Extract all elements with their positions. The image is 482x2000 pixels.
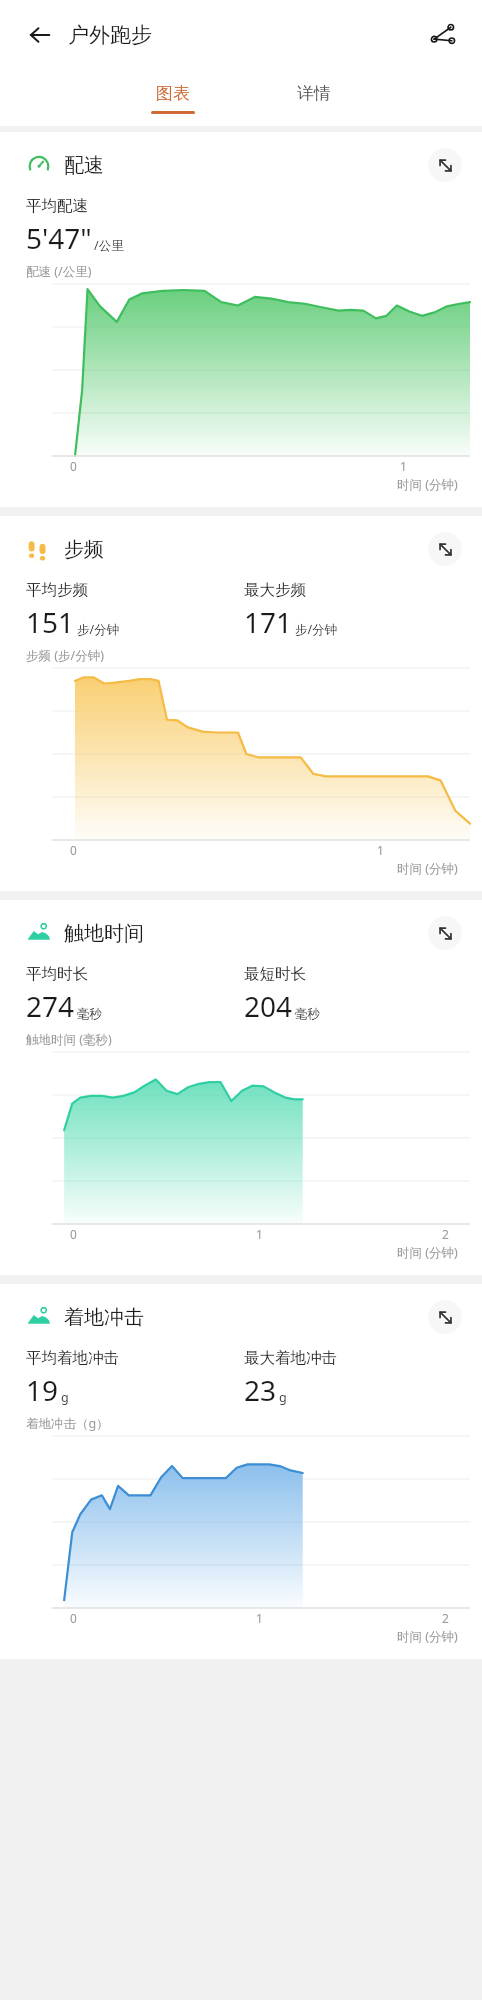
staticText: 0 (70, 1226, 77, 1242)
staticText: 着地冲击（g） (26, 1415, 109, 1432)
staticText: 时间 (分钟) (397, 476, 458, 493)
staticText: 触地时间 (64, 921, 144, 946)
staticText: 2 (442, 1226, 449, 1242)
staticText: /公里 (94, 237, 124, 254)
staticText: 步/分钟 (77, 621, 120, 638)
staticText: 204 (244, 987, 293, 1025)
staticText: 19 (26, 1371, 59, 1409)
button[interactable]: Expand chart (428, 1300, 462, 1334)
button[interactable]: 图表 (137, 79, 209, 118)
staticText: 171 (244, 603, 293, 641)
staticText: 平均着地冲击 (26, 1348, 119, 1368)
staticText: 配速 (/公里) (26, 263, 92, 280)
button[interactable]: Share (422, 14, 464, 56)
staticText: 时间 (分钟) (397, 1628, 458, 1645)
staticText: 151 (26, 603, 75, 641)
staticText: 1 (400, 458, 407, 474)
button[interactable]: Expand chart (428, 532, 462, 566)
staticText: g (279, 1389, 287, 1406)
staticText: 0 (70, 1610, 77, 1626)
staticText: 着地冲击 (64, 1305, 144, 1330)
staticText: 时间 (分钟) (397, 1244, 458, 1261)
staticText: 1 (256, 1226, 263, 1242)
staticText: 0 (70, 842, 77, 858)
staticText: 最短时长 (244, 964, 306, 984)
staticText: 配速 (64, 153, 104, 178)
staticText: 步频 (步/分钟) (26, 647, 104, 664)
staticText: 最大着地冲击 (244, 1348, 337, 1368)
staticText: 详情 (297, 83, 331, 104)
staticText: 274 (26, 987, 75, 1025)
staticText: 步频 (64, 537, 104, 562)
staticText: 毫秒 (77, 1006, 102, 1022)
staticText: 时间 (分钟) (397, 860, 458, 877)
staticText: 最大步频 (244, 580, 306, 600)
staticText: 图表 (156, 83, 190, 104)
staticText: g (61, 1389, 69, 1406)
button[interactable]: Expand chart (428, 148, 462, 182)
button[interactable]: Back (20, 15, 60, 55)
button[interactable]: 详情 (283, 79, 345, 118)
staticText: 毫秒 (295, 1006, 320, 1022)
staticText: 0 (70, 458, 77, 474)
staticText: 2 (442, 1610, 449, 1626)
staticText: 户外跑步 (68, 22, 152, 48)
staticText: 步/分钟 (295, 621, 338, 638)
staticText: 5'47" (26, 219, 92, 257)
staticText: 平均步频 (26, 580, 88, 600)
staticText: 1 (256, 1610, 263, 1626)
staticText: 平均配速 (26, 196, 88, 216)
staticText: 23 (244, 1371, 277, 1409)
staticText: 1 (377, 842, 384, 858)
staticText: 平均时长 (26, 964, 88, 984)
button[interactable]: Expand chart (428, 916, 462, 950)
staticText: 触地时间 (毫秒) (26, 1031, 112, 1048)
